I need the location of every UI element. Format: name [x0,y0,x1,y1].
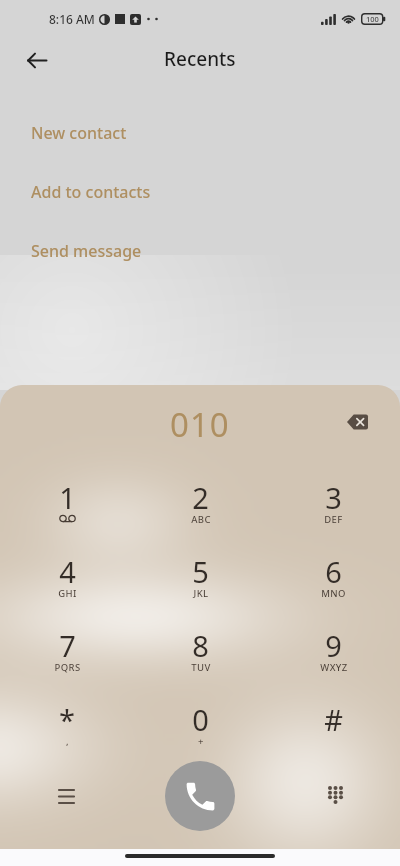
staticText: Add to contacts [31,181,151,203]
staticText: 9 [325,626,342,665]
staticText: * [59,700,75,739]
button[interactable]: 3 [267,478,400,552]
staticText: 2 [192,478,209,517]
button[interactable]: Call [165,761,235,831]
staticText: GHI [58,587,77,600]
staticText: + [198,735,204,748]
staticText: 0 [192,700,209,739]
staticText: New contact [31,122,127,144]
staticText: 4 [59,552,76,591]
staticText: 5 [192,552,209,591]
staticText: MNO [321,587,346,600]
staticText: 8:16 AM [49,11,95,27]
button[interactable]: 7 [0,626,134,700]
button[interactable]: New contact [0,119,400,147]
button[interactable]: 6 [267,552,400,626]
staticText: WXYZ [320,661,348,674]
staticText: JKL [193,587,209,600]
button[interactable]: Back [16,39,58,81]
button[interactable]: 2 [134,478,267,552]
staticText: 6 [325,552,342,591]
button[interactable]: 5 [134,552,267,626]
staticText: Recents [164,46,236,72]
button[interactable]: Backspace [338,403,376,441]
staticText: 100 [366,14,379,24]
staticText: DEF [324,513,343,526]
staticText: 010 [170,402,230,447]
button[interactable]: Send message [0,237,400,265]
button[interactable]: Dialpad [316,776,354,814]
staticText: 8 [192,626,209,665]
staticText: TUV [191,661,211,674]
staticText: , [66,735,69,748]
staticText: 1 [59,478,76,517]
button[interactable]: Menu [47,777,85,815]
button[interactable]: 4 [0,552,134,626]
staticText: 7 [59,626,76,665]
button[interactable]: 9 [267,626,400,700]
staticText: Send message [31,240,142,262]
button[interactable]: 0 [134,700,267,774]
staticText: ABC [191,513,211,526]
button[interactable]: Add to contacts [0,178,400,206]
button[interactable]: # [267,700,400,774]
staticText: 3 [325,478,342,517]
staticText: PQRS [54,661,81,674]
button[interactable]: 8 [134,626,267,700]
button[interactable]: * [0,700,134,774]
button[interactable]: 1 [0,478,134,552]
staticText: # [324,700,343,739]
